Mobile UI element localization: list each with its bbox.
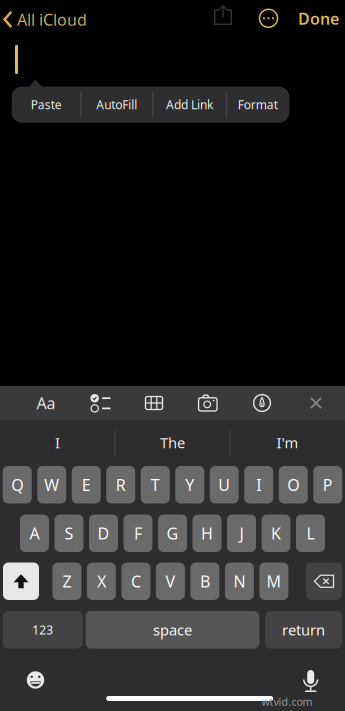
staticText: L: [306, 523, 314, 544]
staticText: S: [64, 523, 73, 544]
staticText: F: [134, 523, 142, 544]
button[interactable]: Emoji: [25, 670, 45, 690]
button[interactable]: Paste: [13, 87, 79, 123]
staticText: J: [239, 523, 243, 544]
staticText: I'm: [276, 433, 298, 452]
button[interactable]: Z: [52, 562, 81, 600]
staticText: Z: [62, 571, 71, 592]
button[interactable]: Share: [213, 5, 233, 26]
staticText: space: [153, 620, 192, 639]
button[interactable]: Markup: [240, 386, 284, 420]
button[interactable]: M: [259, 562, 288, 600]
button[interactable]: S: [54, 514, 83, 552]
staticText: Y: [185, 474, 194, 495]
staticText: P: [323, 474, 333, 495]
staticText: V: [165, 571, 175, 592]
button[interactable]: F: [123, 514, 152, 552]
button[interactable]: More: [258, 8, 279, 29]
staticText: X: [97, 571, 106, 592]
button[interactable]: space: [86, 611, 259, 648]
staticText: 123: [32, 622, 53, 638]
staticText: O: [287, 474, 299, 495]
button[interactable]: I: [244, 466, 273, 503]
button[interactable]: Y: [175, 466, 204, 503]
button[interactable]: H: [192, 514, 221, 552]
button[interactable]: P: [313, 466, 342, 503]
staticText: D: [97, 523, 109, 544]
button[interactable]: C: [121, 562, 150, 600]
button[interactable]: Delete: [306, 562, 342, 600]
staticText: wtvid.com: [261, 694, 312, 709]
staticText: B: [200, 571, 210, 592]
button[interactable]: Checklist: [78, 386, 122, 420]
staticText: I: [55, 433, 60, 452]
staticText: return: [282, 620, 325, 639]
staticText: Q: [11, 474, 23, 495]
button[interactable]: I: [3, 422, 111, 462]
button[interactable]: Format: [24, 386, 68, 420]
button[interactable]: X: [87, 562, 116, 600]
staticText: Paste: [31, 97, 62, 113]
staticText: U: [218, 474, 230, 495]
staticText: H: [201, 523, 213, 544]
button[interactable]: Format: [228, 87, 287, 123]
button[interactable]: K: [261, 514, 290, 552]
button[interactable]: J: [227, 514, 256, 552]
button[interactable]: A: [20, 514, 49, 552]
button[interactable]: Camera: [186, 386, 230, 420]
staticText: Format: [238, 97, 278, 113]
button[interactable]: U: [210, 466, 239, 503]
button[interactable]: E: [72, 466, 101, 503]
button[interactable]: Table: [132, 386, 176, 420]
staticText: E: [82, 474, 91, 495]
button[interactable]: Add Link: [154, 87, 224, 123]
button[interactable]: Dismiss keyboard: [294, 386, 338, 420]
button[interactable]: Q: [3, 466, 32, 503]
button[interactable]: R: [106, 466, 135, 503]
staticText: A: [29, 523, 39, 544]
button[interactable]: Shift: [3, 562, 39, 600]
staticText: M: [266, 571, 281, 592]
button[interactable]: T: [141, 466, 170, 503]
staticText: Aa: [36, 392, 55, 414]
button[interactable]: Done: [298, 8, 339, 29]
button[interactable]: V: [156, 562, 185, 600]
button[interactable]: The: [118, 422, 226, 462]
button[interactable]: N: [225, 562, 254, 600]
button[interactable]: B: [190, 562, 219, 600]
button[interactable]: return: [265, 611, 342, 648]
button[interactable]: I'm: [233, 422, 341, 462]
staticText: R: [116, 474, 126, 495]
staticText: The: [160, 433, 185, 452]
button[interactable]: O: [279, 466, 308, 503]
button[interactable]: W: [37, 466, 66, 503]
staticText: G: [166, 523, 178, 544]
button[interactable]: G: [158, 514, 187, 552]
staticText: All iCloud: [17, 9, 87, 30]
button[interactable]: L: [296, 514, 325, 552]
staticText: K: [271, 523, 281, 544]
button[interactable]: Back to All iCloud: [0, 0, 104, 39]
staticText: Add Link: [166, 97, 213, 113]
staticText: N: [233, 571, 245, 592]
button[interactable]: Dictation: [302, 669, 320, 693]
staticText: I: [256, 474, 261, 495]
button[interactable]: D: [89, 514, 118, 552]
button[interactable]: 123: [3, 611, 83, 648]
staticText: AutoFill: [96, 97, 137, 113]
button[interactable]: AutoFill: [83, 87, 151, 123]
staticText: T: [151, 474, 160, 495]
staticText: Done: [298, 8, 339, 29]
staticText: C: [131, 571, 141, 592]
staticText: W: [44, 474, 59, 495]
